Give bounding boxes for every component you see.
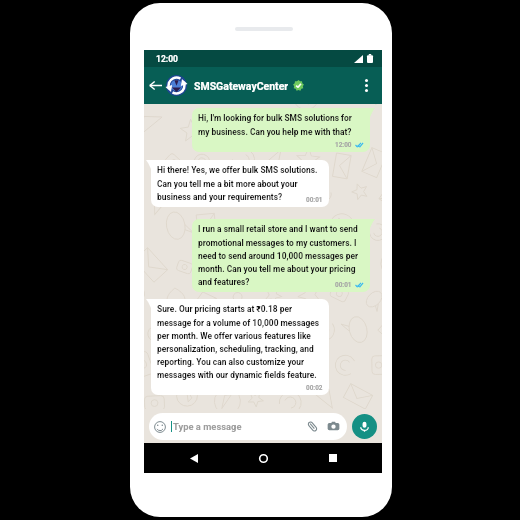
button[interactable]: Camera xyxy=(327,420,340,433)
button[interactable]: Emoji xyxy=(149,413,347,440)
staticText: 12:00 xyxy=(335,141,352,149)
button[interactable]: Home xyxy=(243,443,283,473)
button[interactable]: Attach file xyxy=(306,420,319,433)
staticText: 00:02 xyxy=(306,384,323,392)
button[interactable]: Back xyxy=(144,67,166,104)
button[interactable]: I run a small retail store and I want to… xyxy=(192,219,370,292)
staticText: Hi, I'm looking for bulk SMS solutions f… xyxy=(198,113,364,137)
button[interactable]: Hi there! Yes, we offer bulk SMS solutio… xyxy=(151,160,329,207)
staticText: Type a message xyxy=(173,421,242,432)
staticText: SMSGatewayCenter xyxy=(194,80,289,92)
staticText: 00:01 xyxy=(335,281,352,289)
button[interactable]: Back xyxy=(174,443,214,473)
button[interactable]: Sure. Our pricing starts at ₹0.18 per me… xyxy=(151,299,329,395)
other: Emoji xyxy=(154,421,166,433)
staticText: 12:00 xyxy=(156,54,178,64)
button[interactable]: Recent apps xyxy=(313,443,353,473)
button[interactable]: Record voice message xyxy=(352,414,377,439)
staticText: Sure. Our pricing starts at ₹0.18 per me… xyxy=(157,304,323,380)
staticText: Hi there! Yes, we offer bulk SMS solutio… xyxy=(157,165,323,202)
button[interactable]: More options xyxy=(355,67,377,104)
staticText: I run a small retail store and I want to… xyxy=(198,224,364,287)
button[interactable]: Hi, I'm looking for bulk SMS solutions f… xyxy=(192,108,370,152)
staticText: 00:01 xyxy=(306,196,323,204)
